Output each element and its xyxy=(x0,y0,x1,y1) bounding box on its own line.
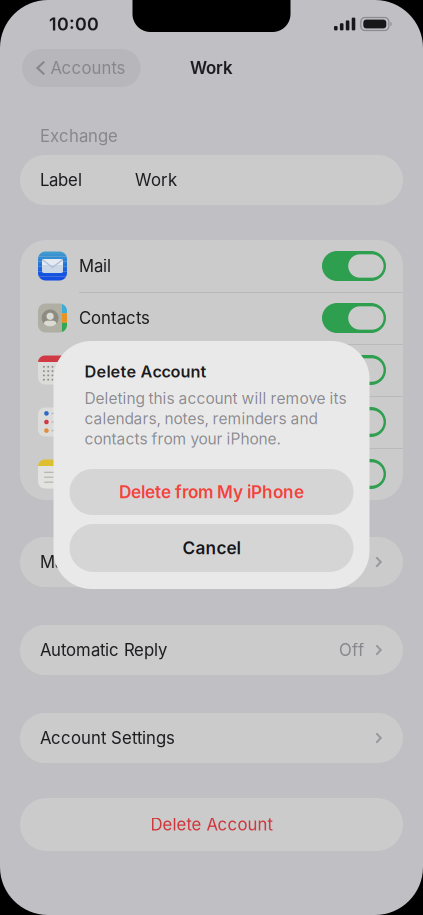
button[interactable]: Contacts xyxy=(20,292,403,344)
staticText: Account Settings xyxy=(40,728,175,748)
staticText: calendars, notes, reminders and xyxy=(84,409,317,428)
button[interactable]: Mail Days to Sync xyxy=(20,537,403,587)
staticText: Label xyxy=(40,170,82,190)
staticText: Mail Days to Sync xyxy=(40,552,181,572)
staticText: Mail xyxy=(79,256,111,276)
staticText: Reminders xyxy=(79,412,163,432)
staticText: Automatic Reply xyxy=(40,640,167,660)
staticText: Calendars xyxy=(79,360,158,380)
staticText: Exchange xyxy=(40,126,118,146)
staticText: 10:00 xyxy=(49,13,99,34)
staticText: Accounts xyxy=(51,58,126,78)
staticText: Deleting this account will remove its xyxy=(84,389,346,407)
staticText: contacts from your iPhone. xyxy=(84,430,280,448)
button[interactable]: Account Settings xyxy=(20,713,403,763)
button[interactable]: Calendars xyxy=(20,344,403,396)
staticText: Cancel xyxy=(182,538,240,558)
staticText: Off xyxy=(339,640,364,660)
staticText: Delete Account xyxy=(150,815,272,834)
staticText: Work xyxy=(135,170,177,190)
staticText: Delete from My iPhone xyxy=(119,482,304,502)
button[interactable]: Delete from My iPhone xyxy=(69,469,353,515)
staticText: Work xyxy=(190,58,233,78)
button[interactable]: Accounts xyxy=(22,49,141,87)
staticText: Contacts xyxy=(79,308,150,328)
staticText: 1 Month xyxy=(302,552,364,572)
button[interactable]: Mail xyxy=(20,240,403,292)
button[interactable]: Automatic Reply xyxy=(20,625,403,675)
button[interactable]: Notes xyxy=(20,448,403,500)
button[interactable]: Delete Account xyxy=(20,798,403,851)
button[interactable]: Cancel xyxy=(69,524,353,572)
staticText: Notes xyxy=(79,464,126,484)
button[interactable]: Reminders xyxy=(20,396,403,448)
staticText: Delete Account xyxy=(84,362,206,381)
